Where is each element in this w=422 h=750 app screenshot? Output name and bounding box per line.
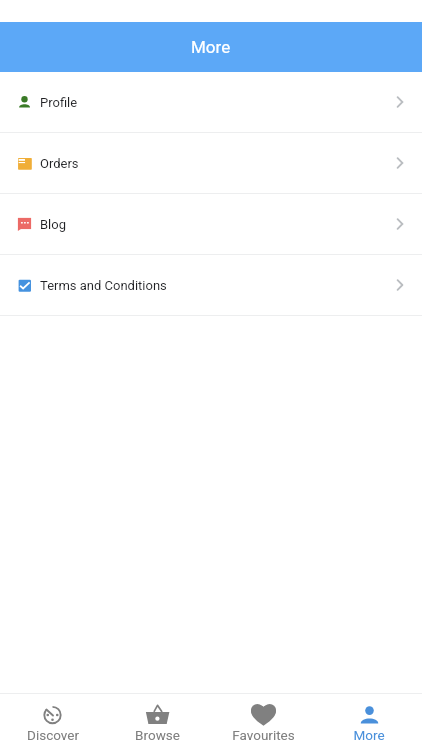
- button[interactable]: Blog: [0, 194, 422, 254]
- staticText: Favourites: [232, 727, 295, 743]
- button[interactable]: Discover: [0, 699, 105, 745]
- button[interactable]: Orders: [0, 133, 422, 193]
- button[interactable]: Terms and Conditions: [0, 255, 422, 315]
- staticText: Discover: [27, 727, 79, 743]
- staticText: Profile: [40, 95, 78, 110]
- staticText: Orders: [40, 156, 79, 171]
- staticText: Blog: [40, 217, 66, 232]
- staticText: More: [353, 727, 385, 743]
- staticText: More: [191, 37, 231, 57]
- button[interactable]: More: [316, 699, 422, 745]
- staticText: Browse: [135, 727, 180, 743]
- button[interactable]: Favourites: [210, 699, 316, 745]
- button[interactable]: Browse: [105, 699, 210, 745]
- staticText: Terms and Conditions: [40, 278, 167, 293]
- button[interactable]: Profile: [0, 72, 422, 132]
